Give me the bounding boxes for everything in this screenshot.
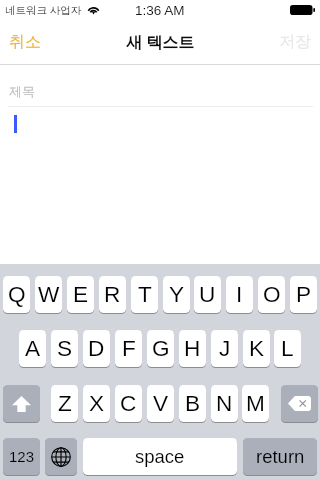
button[interactable]: 제목	[0, 72, 320, 107]
staticText: N	[216, 391, 233, 416]
button[interactable]: R	[99, 276, 126, 314]
button[interactable]: F	[115, 330, 142, 368]
button[interactable]: S	[51, 330, 78, 368]
staticText: H	[184, 336, 201, 361]
button[interactable]: A	[19, 330, 46, 368]
button[interactable]: V	[147, 385, 174, 423]
staticText: 1:36 AM	[135, 3, 185, 18]
staticText: D	[88, 336, 105, 361]
button[interactable]: Q	[3, 276, 30, 314]
button[interactable]: C	[115, 385, 142, 423]
button[interactable]: K	[243, 330, 270, 368]
staticText: T	[138, 282, 152, 307]
button[interactable]: E	[67, 276, 94, 314]
staticText: 제목	[9, 83, 35, 99]
staticText: X	[89, 391, 105, 416]
staticText: V	[153, 391, 169, 416]
staticText: G	[152, 336, 170, 361]
button[interactable]: W	[35, 276, 62, 314]
button[interactable]: P	[290, 276, 317, 314]
staticText: S	[57, 336, 73, 361]
staticText: F	[122, 336, 136, 361]
button[interactable]: Y	[163, 276, 190, 314]
button[interactable]: U	[194, 276, 221, 314]
staticText: 취소	[9, 32, 41, 52]
button[interactable]: O	[258, 276, 285, 314]
staticText: W	[38, 282, 60, 307]
staticText: C	[120, 391, 137, 416]
staticText: J	[219, 336, 231, 361]
staticText: B	[185, 391, 201, 416]
button[interactable]: return	[243, 438, 317, 476]
staticText: space	[135, 446, 185, 467]
button[interactable]: space	[83, 438, 237, 476]
button[interactable]: L	[274, 330, 301, 368]
button[interactable]	[0, 107, 320, 264]
staticText: K	[249, 336, 265, 361]
button[interactable]: Switch keyboard	[45, 438, 77, 476]
staticText: O	[263, 282, 281, 307]
staticText: 네트워크 사업자	[5, 3, 82, 17]
staticText: I	[236, 282, 243, 307]
button[interactable]: Delete	[281, 385, 318, 423]
staticText: 저장	[279, 32, 311, 52]
staticText: R	[104, 282, 121, 307]
staticText: 새 텍스트	[126, 31, 195, 53]
staticText: E	[73, 282, 89, 307]
button[interactable]: N	[211, 385, 238, 423]
button[interactable]: D	[83, 330, 110, 368]
staticText: Y	[169, 282, 185, 307]
button[interactable]: 취소	[0, 22, 50, 62]
button[interactable]: Z	[51, 385, 78, 423]
button[interactable]: I	[226, 276, 253, 314]
button[interactable]: J	[211, 330, 238, 368]
button[interactable]: X	[83, 385, 110, 423]
staticText: 123	[9, 448, 35, 465]
staticText: M	[246, 391, 265, 416]
staticText: P	[296, 282, 312, 307]
button[interactable]: Shift	[3, 385, 40, 423]
staticText: U	[199, 282, 216, 307]
button[interactable]: T	[131, 276, 158, 314]
staticText: return	[256, 446, 305, 467]
button[interactable]: B	[179, 385, 206, 423]
staticText: L	[281, 336, 294, 361]
staticText: Z	[58, 391, 72, 416]
button[interactable]: 저장	[270, 22, 320, 62]
button[interactable]: G	[147, 330, 174, 368]
button[interactable]: H	[179, 330, 206, 368]
staticText: A	[25, 336, 41, 361]
button[interactable]: M	[242, 385, 269, 423]
button[interactable]: 123	[3, 438, 40, 476]
staticText: Q	[8, 282, 26, 307]
